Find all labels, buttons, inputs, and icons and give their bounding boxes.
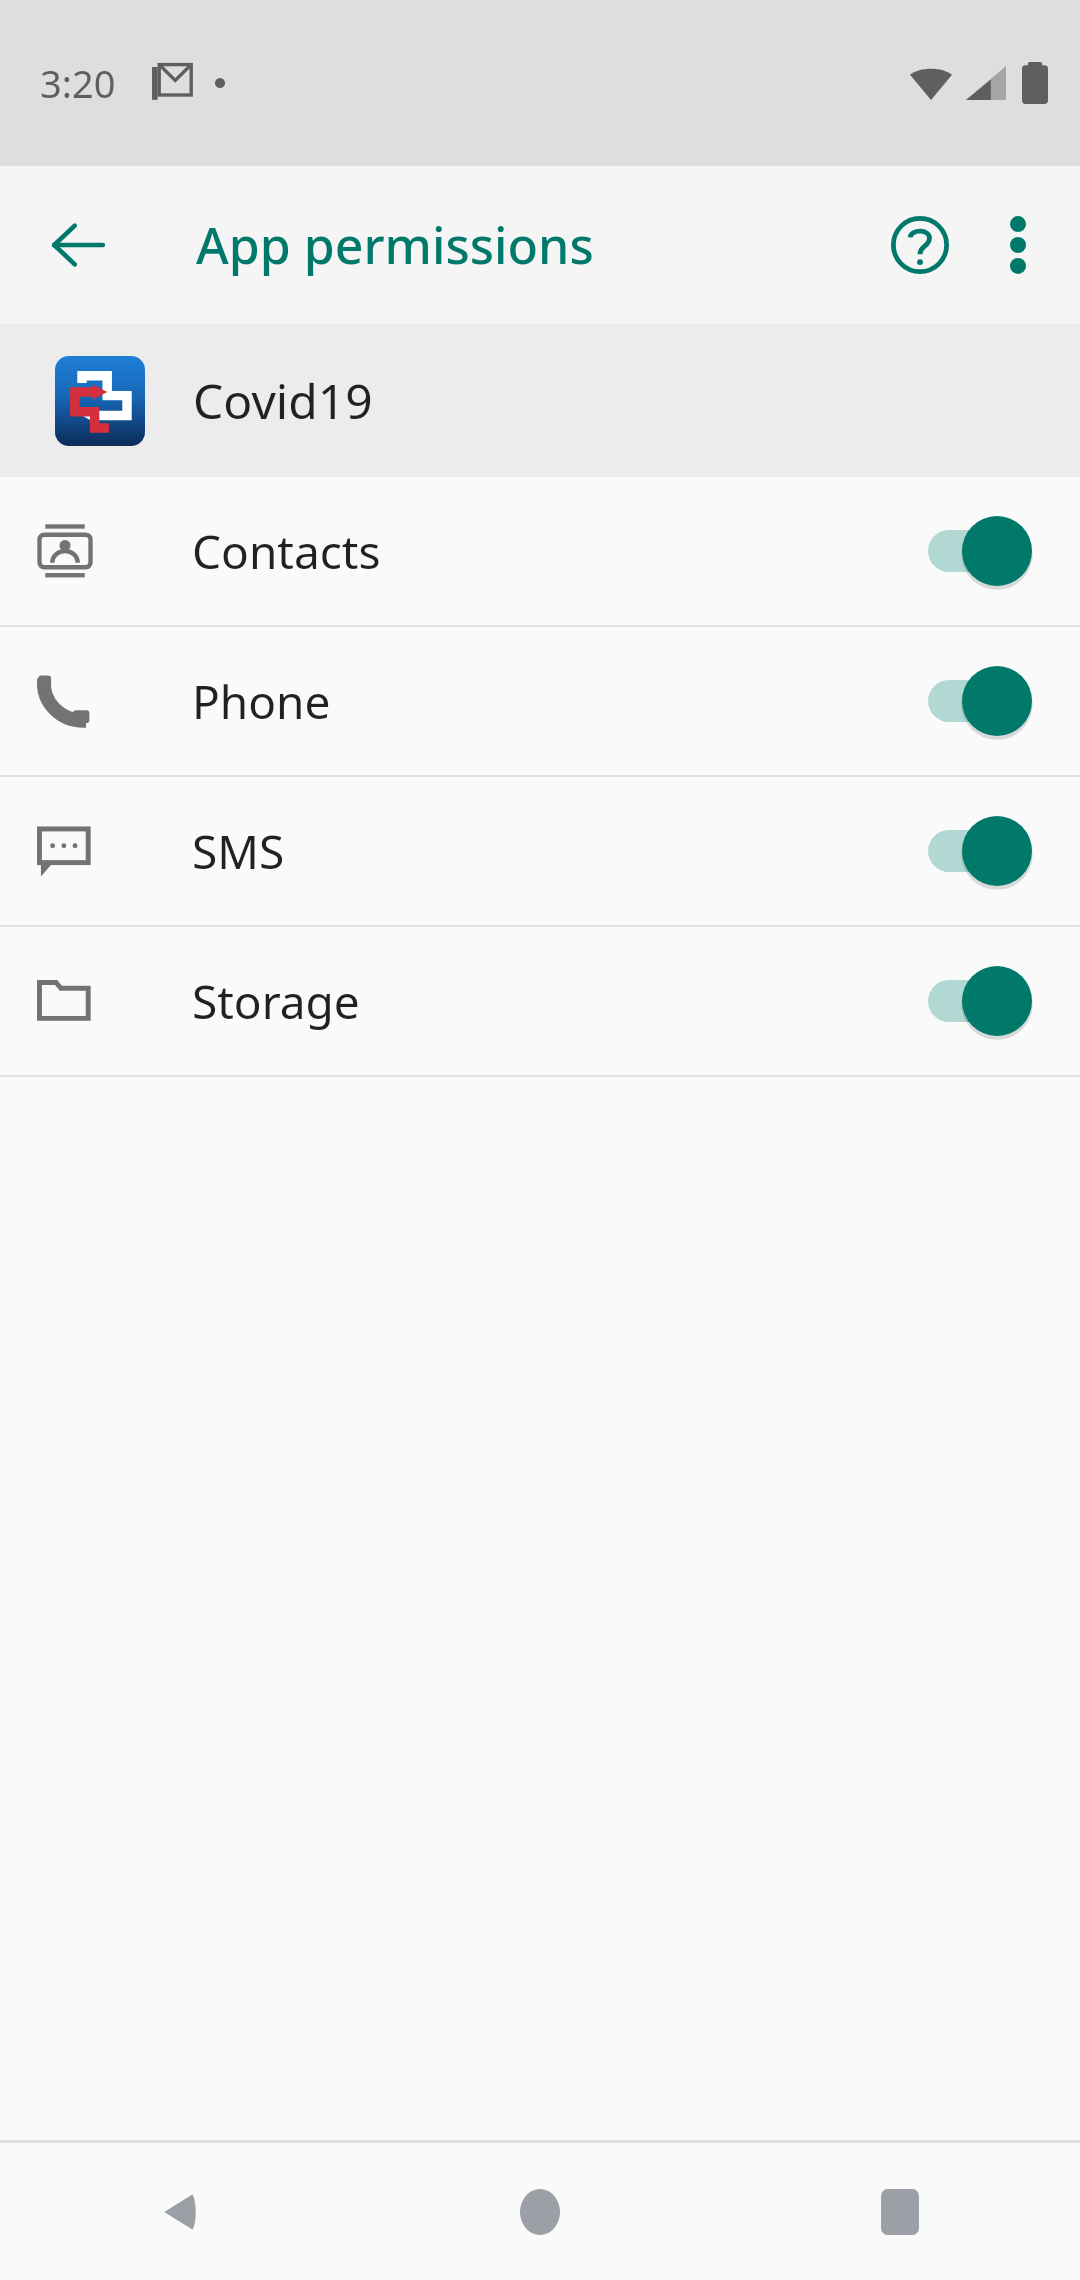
- staticText: 3:20: [40, 57, 116, 109]
- button[interactable]: Back: [0, 2143, 360, 2280]
- staticText: Storage: [192, 970, 360, 1033]
- staticText: Phone: [192, 670, 331, 733]
- button[interactable]: Back: [30, 197, 126, 293]
- button[interactable]: Permission toggle, on: [920, 806, 1040, 896]
- button[interactable]: Recent apps: [720, 2143, 1080, 2280]
- staticText: App permissions: [196, 211, 594, 279]
- button[interactable]: Permission toggle, on: [920, 506, 1040, 596]
- button[interactable]: Home: [360, 2143, 720, 2280]
- staticText: Covid19: [193, 368, 373, 433]
- button[interactable]: Covid19: [0, 324, 1080, 477]
- button[interactable]: Contacts: [0, 477, 1080, 625]
- button[interactable]: Phone: [0, 627, 1080, 775]
- button[interactable]: Help: [870, 195, 970, 295]
- staticText: Contacts: [192, 520, 381, 583]
- button[interactable]: Storage: [0, 927, 1080, 1075]
- staticText: SMS: [192, 820, 285, 883]
- button[interactable]: SMS: [0, 777, 1080, 925]
- button[interactable]: Permission toggle, on: [920, 956, 1040, 1046]
- button[interactable]: Permission toggle, on: [920, 656, 1040, 746]
- button[interactable]: More options: [970, 197, 1066, 293]
